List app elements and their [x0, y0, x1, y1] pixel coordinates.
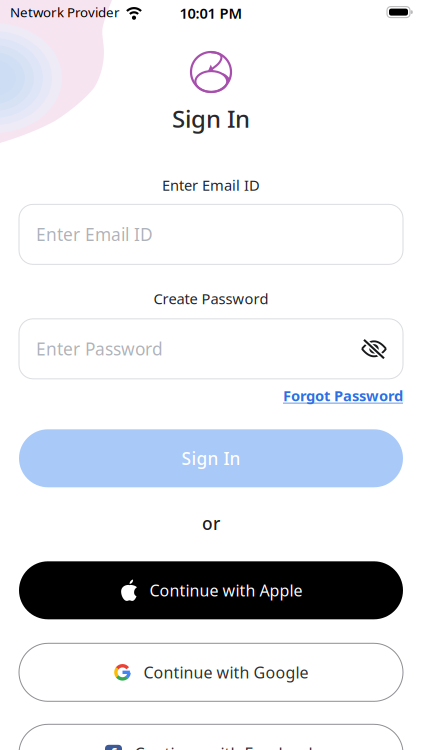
button[interactable]: Continue with Apple: [19, 561, 403, 619]
staticText: Enter Password: [36, 337, 163, 360]
staticText: or: [202, 512, 220, 535]
staticText: Enter Email ID: [36, 223, 153, 246]
staticText: f: [110, 744, 116, 750]
staticText: 10:01 PM: [179, 3, 242, 23]
button[interactable]: Show password: [362, 341, 386, 357]
staticText: Continue with Facebook: [134, 743, 317, 750]
staticText: Enter Email ID: [162, 175, 260, 195]
button[interactable]: Continue with Google: [19, 643, 403, 701]
staticText: Enter Email ID: [36, 223, 153, 246]
button[interactable]: f: [19, 724, 403, 750]
staticText: Sign In: [172, 102, 250, 134]
staticText: Network Provider: [10, 3, 120, 21]
staticText: Enter Password: [36, 337, 163, 360]
staticText: Continue with Google: [143, 662, 308, 683]
button[interactable]: Forgot Password: [283, 386, 403, 405]
textField[interactable]: Enter Email ID: [36, 223, 386, 246]
textField[interactable]: Enter Password: [36, 337, 362, 360]
staticText: Sign In: [181, 447, 240, 470]
button[interactable]: Sign In: [19, 429, 403, 487]
staticText: Create Password: [153, 289, 268, 308]
staticText: Continue with Apple: [149, 580, 302, 601]
staticText: Forgot Password: [283, 386, 403, 405]
